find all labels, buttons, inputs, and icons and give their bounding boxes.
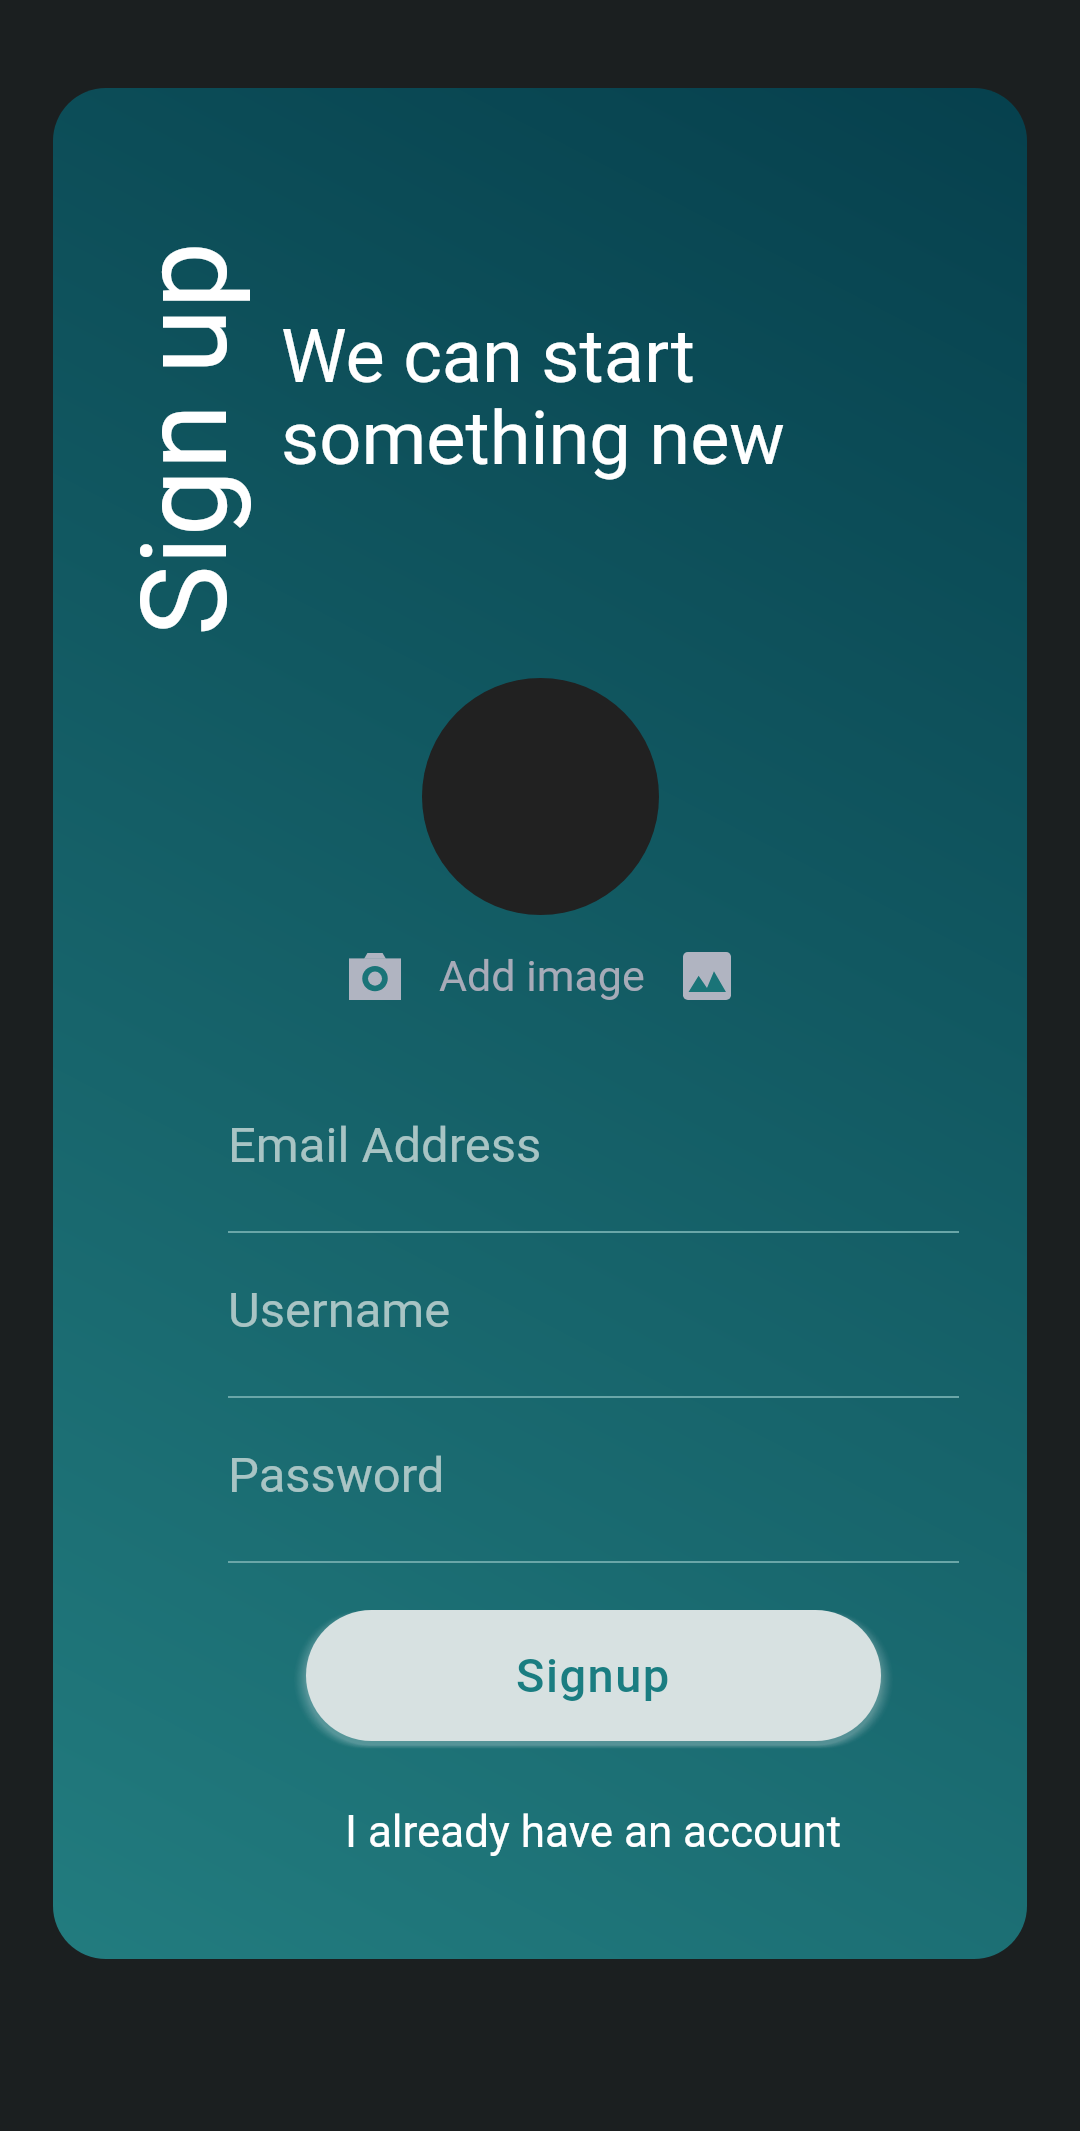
button[interactable]: Profile photo <box>422 678 659 915</box>
button[interactable]: Signup <box>306 1610 881 1741</box>
button[interactable]: Take photo <box>349 953 401 1000</box>
staticText: Username <box>228 1282 451 1339</box>
staticText: We can start something new <box>281 313 785 482</box>
staticText: Password <box>228 1447 445 1504</box>
button[interactable]: Choose from gallery <box>683 952 731 1000</box>
staticText: Signup <box>516 1648 671 1703</box>
button[interactable]: I already have an account <box>325 1796 862 1868</box>
staticText: Sign up <box>116 241 255 636</box>
staticText: I already have an account <box>345 1806 842 1858</box>
staticText: Add image <box>439 951 645 1001</box>
staticText: Email Address <box>228 1117 542 1174</box>
